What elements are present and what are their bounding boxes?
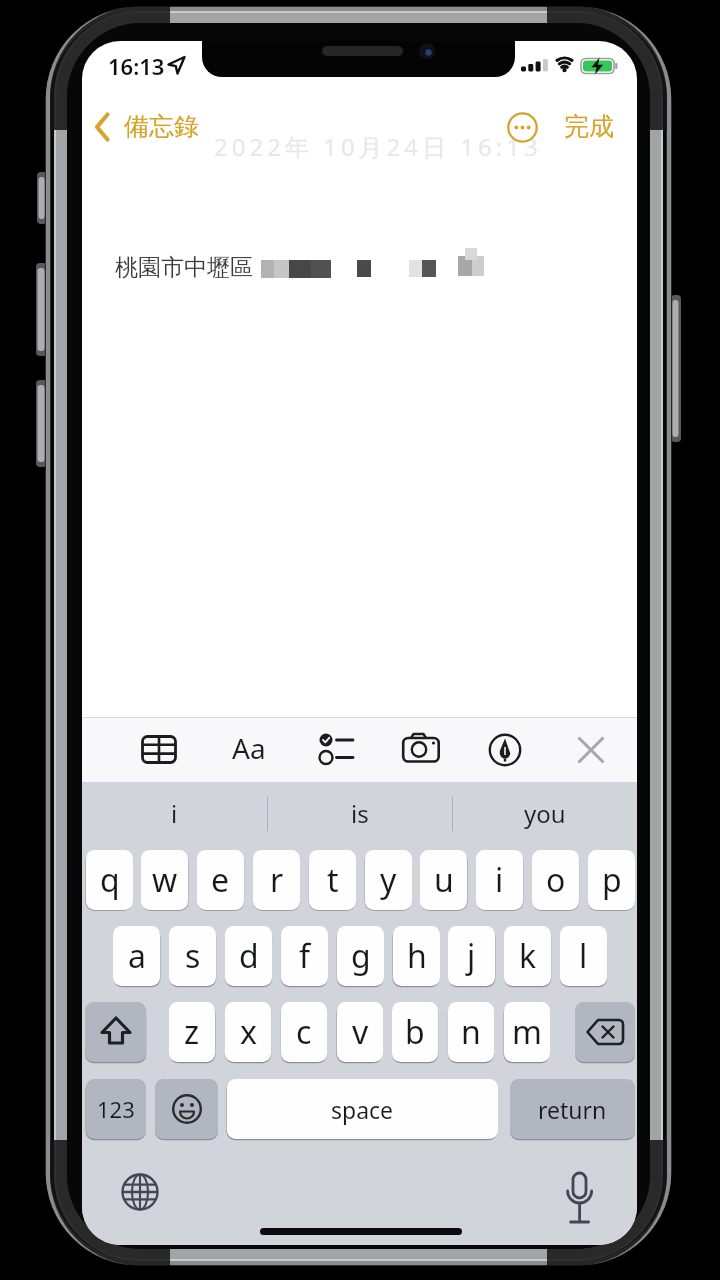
staticText: 完成 xyxy=(564,111,614,142)
button[interactable]: i xyxy=(82,789,267,837)
staticText: q xyxy=(100,858,120,902)
button[interactable]: n xyxy=(448,1002,494,1062)
button[interactable] xyxy=(557,1167,601,1211)
button[interactable] xyxy=(155,1079,218,1139)
staticText: f xyxy=(299,934,311,978)
button[interactable]: space xyxy=(227,1079,498,1139)
staticText: you xyxy=(524,797,566,830)
staticText: a xyxy=(128,934,146,978)
staticText: d xyxy=(239,934,259,978)
button[interactable] xyxy=(504,109,541,146)
staticText: space xyxy=(331,1094,394,1125)
staticText: z xyxy=(184,1010,200,1054)
staticText: return xyxy=(538,1094,607,1125)
button[interactable]: k xyxy=(504,926,551,986)
button[interactable]: is xyxy=(267,789,452,837)
button[interactable]: u xyxy=(420,850,467,910)
staticText: t xyxy=(327,858,339,902)
staticText: m xyxy=(512,1010,542,1054)
button[interactable]: i xyxy=(476,850,523,910)
staticText: c xyxy=(296,1010,312,1054)
staticText: 2022年 10月24日 16:13 xyxy=(214,130,542,160)
staticText: i xyxy=(495,858,504,902)
button[interactable]: z xyxy=(169,1002,215,1062)
staticText: w xyxy=(152,858,178,902)
button[interactable] xyxy=(313,721,369,777)
button[interactable]: y xyxy=(365,850,412,910)
staticText: v xyxy=(352,1010,369,1054)
button[interactable]: Aa xyxy=(221,720,277,776)
button[interactable]: 備忘錄 xyxy=(88,105,253,147)
staticText: j xyxy=(467,934,476,978)
button[interactable]: l xyxy=(560,926,607,986)
staticText: h xyxy=(407,934,427,978)
button[interactable]: m xyxy=(504,1002,550,1062)
button[interactable]: w xyxy=(141,850,188,910)
staticText: 桃園市中壢區 xyxy=(115,253,253,282)
button[interactable]: g xyxy=(337,926,384,986)
button[interactable] xyxy=(85,1002,146,1062)
button[interactable]: j xyxy=(448,926,495,986)
staticText: e xyxy=(211,858,230,902)
button[interactable]: a xyxy=(113,926,160,986)
staticText: 16:13 xyxy=(108,51,165,81)
button[interactable]: d xyxy=(225,926,272,986)
button[interactable]: v xyxy=(337,1002,383,1062)
staticText: r xyxy=(270,858,284,902)
staticText: Aa xyxy=(232,729,266,767)
button[interactable]: 123 xyxy=(86,1079,146,1139)
button[interactable] xyxy=(575,1002,635,1062)
button[interactable] xyxy=(131,721,187,777)
button[interactable] xyxy=(477,722,533,778)
button[interactable]: you xyxy=(452,789,637,837)
staticText: n xyxy=(461,1010,481,1054)
staticText: y xyxy=(380,858,397,902)
button[interactable]: f xyxy=(281,926,328,986)
button[interactable] xyxy=(393,720,449,776)
staticText: x xyxy=(240,1010,257,1054)
button[interactable]: r xyxy=(253,850,300,910)
staticText: g xyxy=(351,934,371,978)
staticText: 備忘錄 xyxy=(124,111,199,142)
staticText: 123 xyxy=(97,1094,135,1124)
button[interactable] xyxy=(118,1170,162,1214)
staticText: b xyxy=(405,1010,425,1054)
staticText: o xyxy=(546,858,566,902)
button[interactable]: o xyxy=(532,850,579,910)
staticText: l xyxy=(579,934,588,978)
button[interactable]: 完成 xyxy=(528,110,637,142)
staticText: p xyxy=(602,858,622,902)
button[interactable]: return xyxy=(510,1079,635,1139)
button[interactable]: h xyxy=(393,926,440,986)
button[interactable]: b xyxy=(392,1002,438,1062)
button[interactable]: x xyxy=(225,1002,271,1062)
button[interactable] xyxy=(563,722,619,778)
staticText: is xyxy=(351,797,369,830)
button[interactable]: t xyxy=(309,850,356,910)
button[interactable]: e xyxy=(197,850,244,910)
staticText: u xyxy=(434,858,454,902)
button[interactable]: s xyxy=(169,926,216,986)
staticText: i xyxy=(171,797,178,830)
staticText: k xyxy=(519,934,537,978)
button[interactable]: p xyxy=(588,850,635,910)
button[interactable]: c xyxy=(281,1002,327,1062)
staticText: s xyxy=(185,934,201,978)
button[interactable]: q xyxy=(86,850,133,910)
